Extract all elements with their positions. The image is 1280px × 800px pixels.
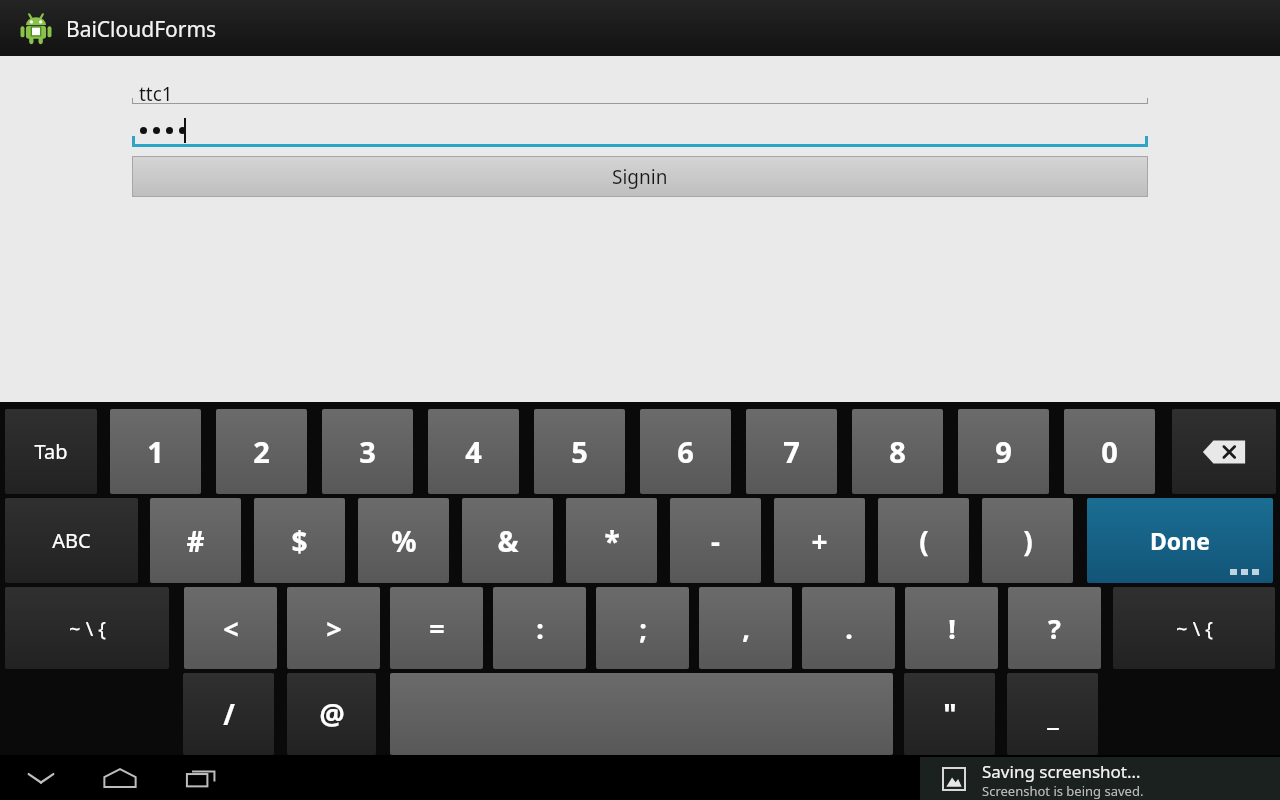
button[interactable]: >	[287, 587, 380, 669]
button[interactable]: 4	[428, 409, 519, 494]
staticText: "	[943, 695, 957, 733]
button[interactable]: Recent apps	[176, 761, 226, 795]
button[interactable]: 7	[746, 409, 837, 494]
button[interactable]: @	[287, 673, 376, 755]
button[interactable]: 8	[852, 409, 943, 494]
button[interactable]: _	[1007, 673, 1098, 755]
button[interactable]: 1	[110, 409, 201, 494]
staticText: ~ \ {	[1176, 615, 1213, 642]
button[interactable]: 3	[322, 409, 413, 494]
button[interactable]: Saving screenshot…	[920, 757, 1280, 800]
button[interactable]: $	[254, 498, 345, 583]
button[interactable]: )	[982, 498, 1073, 583]
button[interactable]: 9	[958, 409, 1049, 494]
button[interactable]: ,	[699, 587, 792, 669]
staticText: ?	[1048, 610, 1061, 647]
staticText: &	[497, 522, 519, 560]
button[interactable]: 6	[640, 409, 731, 494]
staticText: 1	[147, 432, 164, 471]
staticText: $	[291, 522, 308, 560]
button[interactable]: ~ \ {	[1113, 587, 1275, 669]
staticText: ~ \ {	[69, 615, 106, 642]
staticText: =	[429, 610, 445, 647]
staticText: 0	[1101, 432, 1118, 471]
staticText: 6	[677, 432, 694, 471]
staticText: Tab	[34, 438, 68, 465]
button[interactable]: .	[802, 587, 895, 669]
staticText: :	[536, 610, 544, 647]
staticText: ;	[639, 610, 647, 647]
staticText: 5	[571, 432, 588, 471]
button[interactable]: ?	[1008, 587, 1101, 669]
staticText: <	[223, 610, 239, 647]
button[interactable]: Space	[390, 673, 893, 755]
staticText: !	[948, 610, 956, 647]
staticText: 8	[889, 432, 906, 471]
staticText: ABC	[52, 527, 91, 554]
button[interactable]: App icon	[18, 10, 54, 46]
staticText: .	[845, 610, 853, 647]
button[interactable]: Delete	[1172, 409, 1276, 494]
staticText: @	[319, 695, 345, 733]
staticText: 7	[783, 432, 800, 471]
staticText: 3	[359, 432, 376, 471]
button[interactable]: (	[878, 498, 969, 583]
staticText: #	[186, 522, 205, 560]
button[interactable]: Tab	[5, 409, 97, 494]
button[interactable]: ABC	[5, 498, 138, 583]
staticText: (	[919, 522, 929, 560]
button[interactable]: =	[390, 587, 483, 669]
staticText: Signin	[612, 164, 668, 190]
staticText: *	[604, 522, 620, 560]
staticText: %	[391, 522, 417, 560]
staticText: +	[811, 522, 828, 560]
staticText: ,	[742, 610, 750, 647]
staticText: 4	[465, 432, 482, 471]
button[interactable]: ~ \ {	[5, 587, 169, 669]
button[interactable]: %	[358, 498, 449, 583]
button[interactable]: ;	[596, 587, 689, 669]
button[interactable]: #	[150, 498, 241, 583]
button[interactable]: 5	[534, 409, 625, 494]
button[interactable]: 2	[216, 409, 307, 494]
button[interactable]: Signin	[132, 156, 1148, 197]
staticText: 9	[995, 432, 1012, 471]
button[interactable]: /	[183, 673, 274, 755]
button[interactable]: :	[493, 587, 586, 669]
staticText: ttc1	[139, 81, 173, 107]
staticText: -	[711, 522, 720, 560]
button[interactable]: Home	[95, 761, 145, 795]
button[interactable]: !	[905, 587, 998, 669]
button[interactable]: "	[904, 673, 995, 755]
staticText: >	[326, 610, 342, 647]
button[interactable]: 0	[1064, 409, 1155, 494]
button[interactable]: Back	[16, 761, 66, 795]
button[interactable]: <	[184, 587, 277, 669]
staticText: _	[1047, 695, 1059, 733]
button[interactable]: &	[462, 498, 553, 583]
staticText: BaiCloudForms	[66, 15, 217, 44]
staticText: Saving screenshot…	[982, 760, 1141, 783]
staticText: Screenshot is being saved.	[982, 782, 1144, 800]
button[interactable]: Done	[1087, 498, 1273, 583]
button[interactable]: +	[774, 498, 865, 583]
staticText: Done	[1150, 525, 1210, 556]
staticText: 2	[253, 432, 270, 471]
button[interactable]: -	[670, 498, 761, 583]
button[interactable]: *	[566, 498, 657, 583]
staticText: )	[1023, 522, 1033, 560]
staticText: /	[223, 695, 235, 733]
